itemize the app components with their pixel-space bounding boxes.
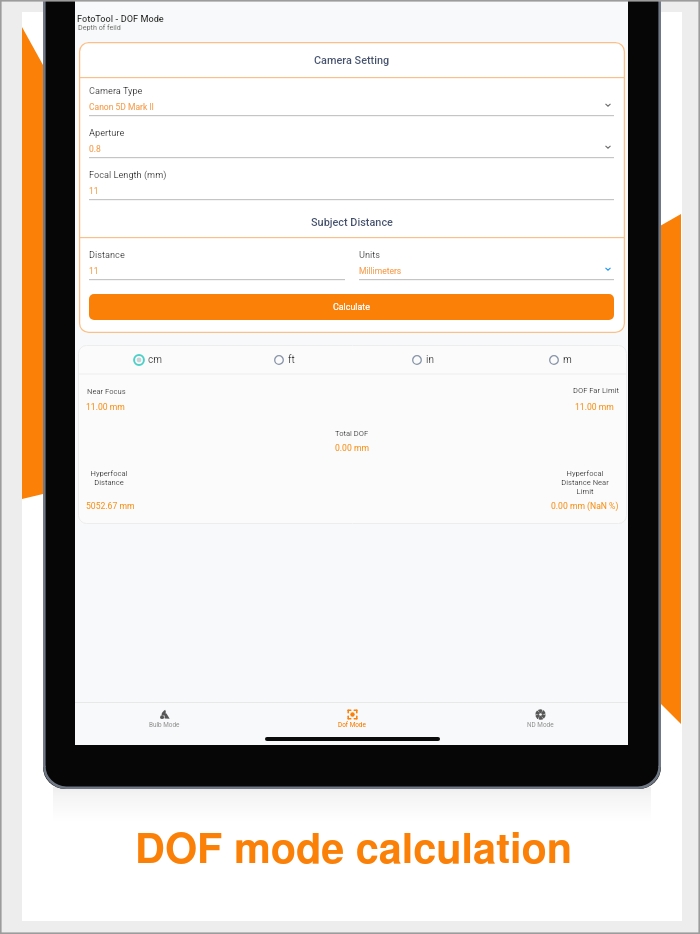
staticText: Camera Type bbox=[89, 85, 143, 96]
staticText: 0.8 bbox=[89, 144, 101, 154]
staticText: in bbox=[426, 354, 434, 366]
staticText: Canon 5D Mark II bbox=[89, 102, 154, 112]
staticText: 11 bbox=[89, 186, 99, 196]
button[interactable]: cm bbox=[133, 352, 148, 368]
staticText: Millimeters bbox=[359, 266, 402, 276]
staticText: Aperture bbox=[89, 127, 125, 138]
staticText: Total DOF bbox=[335, 429, 369, 438]
staticText: Hyperfocal Distance bbox=[69, 469, 149, 487]
button[interactable]: ND Mode bbox=[510, 704, 570, 732]
staticText: 0.00 mm (NaN %) bbox=[551, 501, 619, 511]
staticText: m bbox=[563, 354, 572, 366]
button[interactable]: ft bbox=[273, 352, 285, 368]
staticText: 5052.67 mm bbox=[86, 501, 135, 511]
staticText: 11.00 mm bbox=[86, 402, 125, 412]
staticText: DOF mode calculation bbox=[135, 816, 573, 875]
staticText: Subject Distance bbox=[311, 216, 393, 229]
button[interactable]: in bbox=[411, 352, 423, 368]
staticText: Hyperfocal Distance Near Limit bbox=[537, 469, 633, 496]
staticText: Near Focus bbox=[87, 387, 126, 396]
staticText: 11.00 mm bbox=[575, 402, 614, 412]
staticText: ft bbox=[288, 354, 295, 366]
staticText: Bulb Mode bbox=[149, 721, 180, 729]
staticText: ND Mode bbox=[527, 721, 554, 729]
staticText: Focal Length (mm) bbox=[89, 169, 167, 180]
button[interactable]: Bulb Mode bbox=[134, 704, 194, 732]
staticText: Depth of feild bbox=[78, 23, 121, 31]
staticText: FotoTool - DOF Mode bbox=[77, 13, 164, 24]
staticText: Calculate bbox=[333, 302, 370, 312]
staticText: cm bbox=[148, 354, 163, 366]
staticText: Camera Setting bbox=[314, 54, 390, 67]
staticText: Distance bbox=[89, 249, 125, 260]
staticText: Units bbox=[359, 249, 381, 260]
button[interactable]: m bbox=[548, 352, 560, 368]
staticText: 11 bbox=[89, 266, 99, 276]
staticText: 0.00 mm bbox=[335, 443, 369, 453]
staticText: Dof Mode bbox=[338, 721, 366, 729]
button[interactable]: Calculate bbox=[89, 294, 614, 320]
button[interactable]: Dof Mode bbox=[322, 704, 382, 732]
staticText: DOF Far Limit bbox=[573, 386, 619, 395]
